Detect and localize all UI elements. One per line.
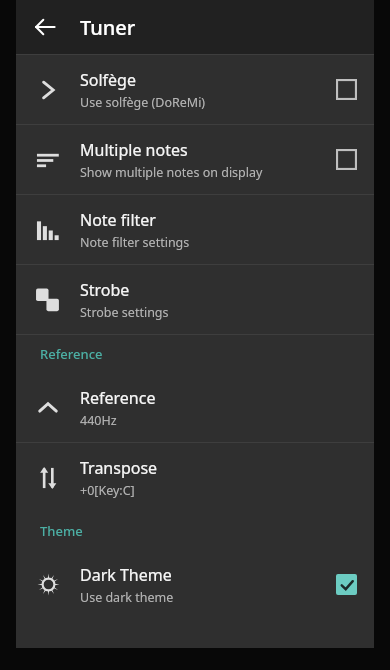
staticText: Multiple notes bbox=[80, 139, 188, 161]
staticText: Reference bbox=[80, 387, 156, 409]
button[interactable]: Multiple notes checkbox bbox=[318, 125, 374, 194]
button[interactable]: Note filter bbox=[16, 195, 374, 264]
button[interactable]: Dark Theme bbox=[16, 550, 374, 619]
staticText: Use solfège (DoReMi) bbox=[80, 94, 206, 111]
staticText: Solfège bbox=[80, 69, 136, 91]
staticText: Theme bbox=[40, 522, 83, 540]
staticText: Tuner bbox=[80, 14, 136, 41]
button[interactable]: Solfège bbox=[16, 55, 374, 124]
button[interactable]: Transpose bbox=[16, 443, 374, 512]
button[interactable]: Reference bbox=[16, 373, 374, 442]
button[interactable]: Multiple notes bbox=[16, 125, 374, 194]
staticText: +0[Key:C] bbox=[80, 482, 135, 499]
button[interactable]: Back bbox=[22, 4, 68, 50]
staticText: Note filter settings bbox=[80, 234, 190, 251]
staticText: Transpose bbox=[80, 457, 158, 479]
staticText: Use dark theme bbox=[80, 589, 174, 606]
staticText: Reference bbox=[40, 345, 103, 363]
button[interactable]: Dark Theme checkbox bbox=[318, 550, 374, 619]
button[interactable]: Strobe bbox=[16, 265, 374, 334]
staticText: Note filter bbox=[80, 209, 156, 231]
staticText: Show multiple notes on display bbox=[80, 164, 263, 181]
staticText: 440Hz bbox=[80, 412, 117, 429]
staticText: Dark Theme bbox=[80, 564, 172, 586]
staticText: Strobe bbox=[80, 279, 130, 301]
button[interactable]: Solfège checkbox bbox=[318, 55, 374, 124]
staticText: Strobe settings bbox=[80, 304, 169, 321]
